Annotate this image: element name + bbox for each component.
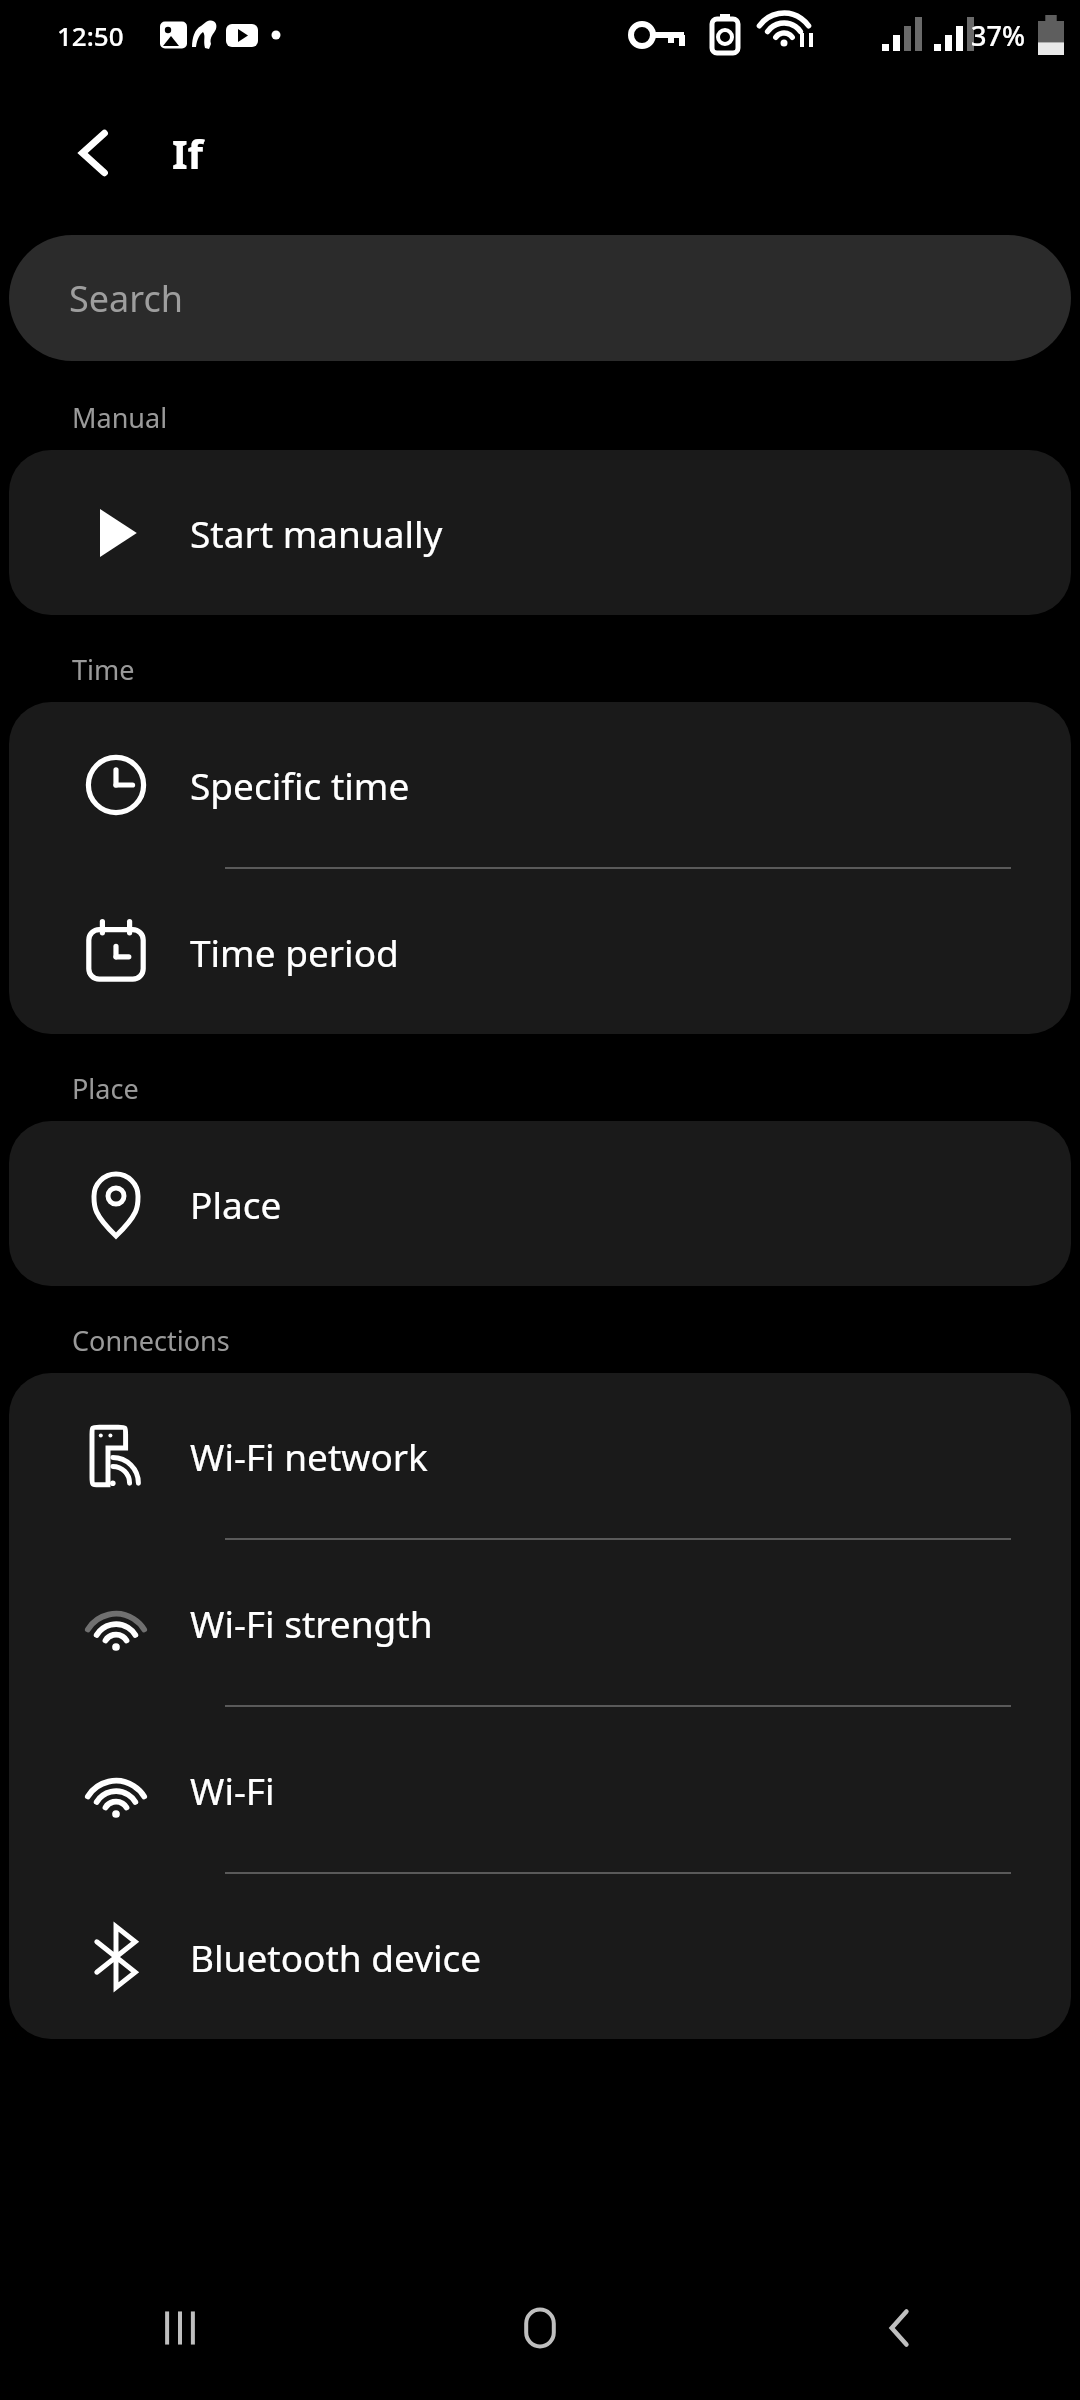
staticText: Specific time <box>190 760 410 810</box>
staticText: 12:50 <box>57 18 124 53</box>
staticText: Manual <box>72 399 168 436</box>
button[interactable]: Recents <box>0 2255 360 2400</box>
button[interactable]: Wi-Fi strength <box>9 1540 1071 1705</box>
staticText: 37% <box>971 17 1025 54</box>
staticText: Time period <box>190 927 399 977</box>
button[interactable]: Place <box>9 1121 1071 1286</box>
staticText: Wi-Fi strength <box>190 1598 433 1648</box>
staticText: Wi-Fi <box>190 1765 275 1815</box>
button[interactable]: Bluetooth device <box>9 1874 1071 2039</box>
button[interactable]: Time period <box>9 869 1071 1034</box>
staticText: Place <box>190 1179 282 1229</box>
staticText: Time <box>72 651 135 688</box>
staticText: Search <box>69 274 183 323</box>
button[interactable]: Start manually <box>9 450 1071 615</box>
button[interactable]: Search <box>9 235 1071 361</box>
button[interactable]: Specific time <box>9 702 1071 867</box>
button[interactable]: Wi-Fi <box>9 1707 1071 1872</box>
staticText: Start manually <box>190 508 443 558</box>
staticText: Connections <box>72 1322 230 1359</box>
staticText: Place <box>72 1070 139 1107</box>
staticText: Bluetooth device <box>190 1932 482 1982</box>
button[interactable]: Back <box>42 101 146 205</box>
staticText: Wi-Fi network <box>190 1431 428 1481</box>
button[interactable]: Back <box>720 2255 1080 2400</box>
button[interactable]: Home <box>360 2255 720 2400</box>
button[interactable]: Wi-Fi network <box>9 1373 1071 1538</box>
staticText: If <box>172 126 204 180</box>
